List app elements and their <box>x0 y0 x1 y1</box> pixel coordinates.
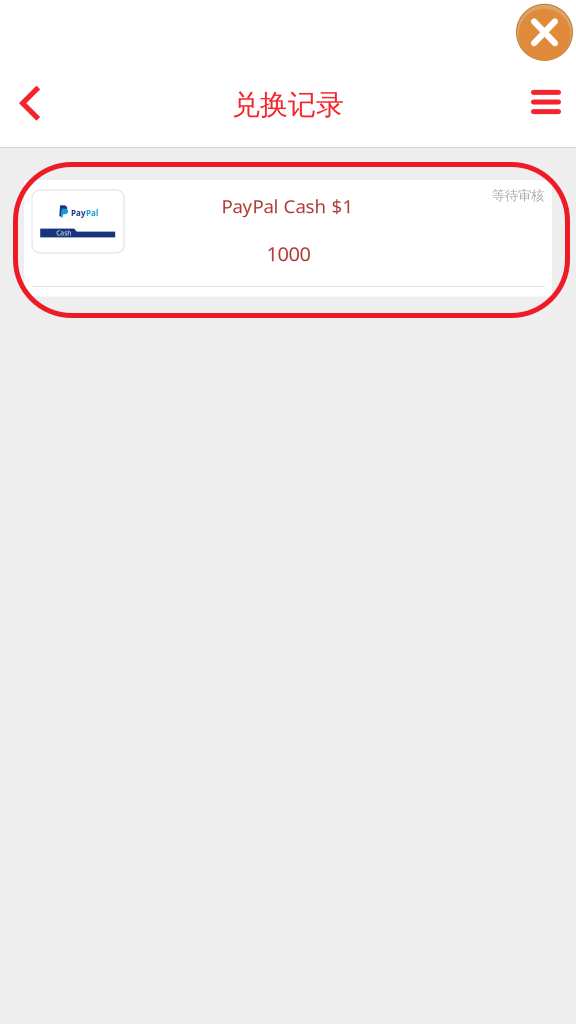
button[interactable]: Close <box>511 0 576 64</box>
staticText: Pal <box>86 208 98 218</box>
staticText: 等待审核 <box>492 187 544 204</box>
button[interactable]: PayPal Cash $1, 1000, 等待审核 <box>24 180 552 296</box>
staticText: 1000 <box>266 240 310 267</box>
button[interactable]: Back <box>1 75 59 131</box>
staticText: Pay <box>71 208 86 218</box>
staticText: PayPal Cash $1 <box>221 194 353 218</box>
button[interactable]: Menu <box>517 74 575 130</box>
staticText: Cash <box>56 229 71 237</box>
staticText: 兑换记录 <box>232 88 344 122</box>
